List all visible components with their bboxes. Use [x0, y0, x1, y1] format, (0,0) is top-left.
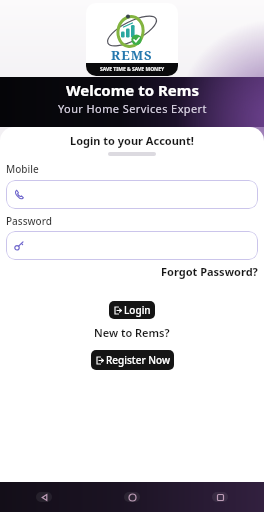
button[interactable]: Login: [109, 301, 155, 319]
staticText: Welcome to Rems: [66, 80, 199, 100]
button[interactable]: Register Now: [91, 350, 174, 370]
button[interactable]: [6, 231, 258, 260]
button[interactable]: Forgot Password?: [161, 264, 258, 279]
staticText: Register Now: [106, 353, 170, 367]
staticText: Password: [6, 214, 52, 228]
staticText: Login to your Account!: [70, 133, 194, 148]
staticText: Login: [124, 303, 151, 317]
staticText: REMS: [111, 46, 153, 63]
button[interactable]: [0, 482, 88, 512]
button[interactable]: [176, 482, 264, 512]
staticText: SAVE TIME & SAVE MONEY: [100, 66, 165, 73]
staticText: New to Rems?: [94, 325, 170, 340]
staticText: Your Home Services Expert: [58, 101, 207, 116]
button[interactable]: [88, 482, 176, 512]
staticText: Mobile: [6, 162, 39, 176]
button[interactable]: [6, 180, 258, 209]
